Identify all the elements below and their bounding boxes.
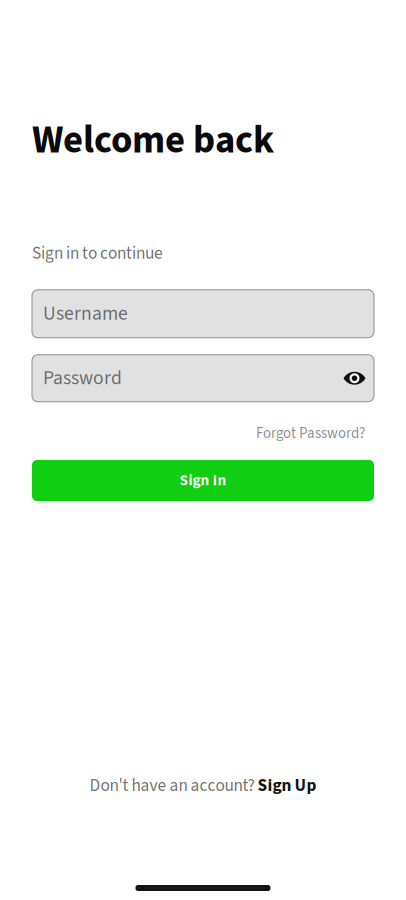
staticText: Welcome back xyxy=(32,113,274,168)
button[interactable]: Show password xyxy=(343,370,366,386)
staticText: Forgot Password? xyxy=(256,423,365,444)
staticText: Username xyxy=(43,300,128,328)
button[interactable]: Sign In xyxy=(32,460,374,501)
button[interactable]: Don't have an account? xyxy=(0,773,406,798)
button[interactable]: Forgot Password? xyxy=(256,423,365,444)
staticText: Sign Up xyxy=(257,773,316,798)
staticText: Sign In xyxy=(179,470,226,491)
staticText: Don't have an account? xyxy=(89,773,257,798)
staticText: Password xyxy=(43,364,122,392)
staticText: Sign in to continue xyxy=(32,241,163,266)
